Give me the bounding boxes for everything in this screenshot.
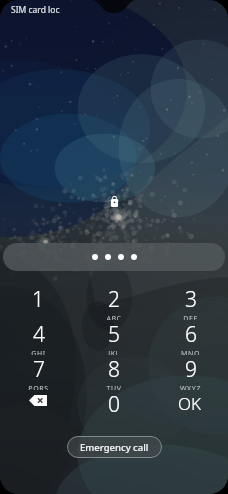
staticText: JKL (108, 349, 120, 355)
button[interactable]: 7 (0, 355, 76, 390)
staticText: 0 (108, 390, 120, 419)
button[interactable]: 6 (152, 320, 228, 355)
button[interactable]: 1 (0, 285, 76, 320)
staticText: 3 (185, 285, 197, 314)
staticText: 9 (185, 355, 197, 384)
staticText: 8 (108, 355, 120, 384)
staticText: 4 (33, 320, 45, 349)
staticText: Emergency call (80, 441, 149, 454)
staticText: 2 (108, 285, 120, 314)
button[interactable]: 3 (152, 285, 228, 320)
staticText: MNO (181, 349, 200, 355)
staticText: OK (178, 392, 202, 415)
button[interactable]: 8 (76, 355, 152, 390)
button[interactable]: OK (152, 390, 228, 425)
staticText: SIM card loc (11, 4, 60, 16)
staticText: ABC (106, 314, 122, 320)
staticText: TUV (106, 384, 122, 390)
staticText: WXYZ (180, 384, 201, 390)
staticText: 1 (32, 285, 44, 314)
staticText: GHI (31, 349, 46, 355)
button[interactable]: Backspace (0, 390, 76, 425)
staticText: 6 (185, 320, 197, 349)
button[interactable]: 0 (76, 390, 152, 425)
button[interactable]: 4 (0, 320, 76, 355)
staticText: 7 (33, 355, 45, 384)
button[interactable]: 2 (76, 285, 152, 320)
staticText: PQRS (28, 384, 49, 390)
staticText: 5 (108, 320, 120, 349)
button[interactable]: 9 (152, 355, 228, 390)
button[interactable]: Emergency call (67, 436, 162, 458)
staticText: DEF (183, 314, 198, 320)
button[interactable] (3, 243, 225, 271)
other: Locked (110, 195, 119, 207)
button[interactable]: 5 (76, 320, 152, 355)
